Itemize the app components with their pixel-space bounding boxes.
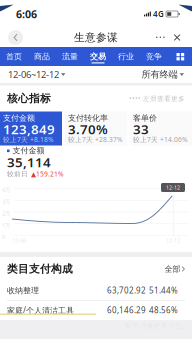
staticText: 12-06~12-12 [8,68,59,81]
button[interactable]: 支付金额 [0,111,62,145]
staticText: 所有终端 [142,69,178,80]
staticText: 首页 [6,52,22,61]
staticText: 0 [2,233,5,240]
button[interactable]: Close [167,30,184,45]
staticText: 4万 [2,186,10,193]
staticText: 60,146.29 [107,305,146,315]
button[interactable]: 所有终端 [142,69,184,80]
button[interactable]: 全部 [165,264,185,274]
staticText: 51.44% [149,285,178,296]
staticText: 12-12 [166,237,180,244]
button[interactable]: More [155,30,167,44]
staticText: 4G [153,9,164,19]
button[interactable]: 家庭/个人清洁工具 [0,301,192,320]
staticText: 商品 [34,52,50,61]
staticText: 2万 [2,210,10,217]
staticText: 较上7天 +28.37% [68,135,123,144]
button[interactable]: 商品 [28,47,56,66]
button[interactable]: 交易 [84,47,112,66]
staticText: 12-06 [12,237,26,244]
staticText: 收纳整理 [7,286,39,295]
staticText: 6:06 [16,7,37,21]
staticText: •••• 左滑查看更多 [129,94,185,103]
staticText: 123,849 [3,120,55,138]
staticText: 支付转化率 [68,113,108,123]
staticText: 竞争 [146,52,162,61]
button[interactable]: 流量 [56,47,84,66]
button[interactable]: 支付转化率 [65,111,127,145]
staticText: 支付金额 [13,146,45,155]
button[interactable]: 12-06~12-12 [8,68,65,81]
staticText: 核心指标 [7,92,51,105]
staticText: 12-12 [166,184,180,191]
staticText: 48.56% [149,305,178,315]
staticText: 较前日 [7,170,28,178]
staticText: 3万 [2,198,10,205]
staticText: 35,114 [7,153,51,171]
button[interactable]: 首页 [0,47,28,66]
button[interactable]: Back [8,30,23,45]
staticText: 生意参谋 [74,31,118,44]
staticText: 1万 [2,222,10,229]
button[interactable]: 客单价 [130,111,192,145]
button[interactable]: All sections [169,47,192,66]
staticText: 全部 [165,264,181,274]
button[interactable]: 竞争 [140,47,168,66]
staticText: 3.70% [68,120,108,138]
staticText: 客单价 [133,113,157,123]
staticText: 行业 [118,52,134,61]
staticText: 较上7天 +14.06% [133,135,188,144]
staticText: 类目支付构成 [7,262,73,275]
staticText: 支付金额 [3,113,35,123]
staticText: 较上7天 +8.18% [3,135,54,144]
staticText: ▲159.21% [31,170,64,178]
button[interactable]: 收纳整理 [0,281,192,300]
staticText: 33 [133,120,149,138]
staticText: 63,702.92 [107,285,146,296]
staticText: 交易 [90,52,106,61]
staticText: 家庭/个人清洁工具 [7,305,74,315]
staticText: 流量 [62,52,78,61]
button[interactable]: 行业 [112,47,140,66]
